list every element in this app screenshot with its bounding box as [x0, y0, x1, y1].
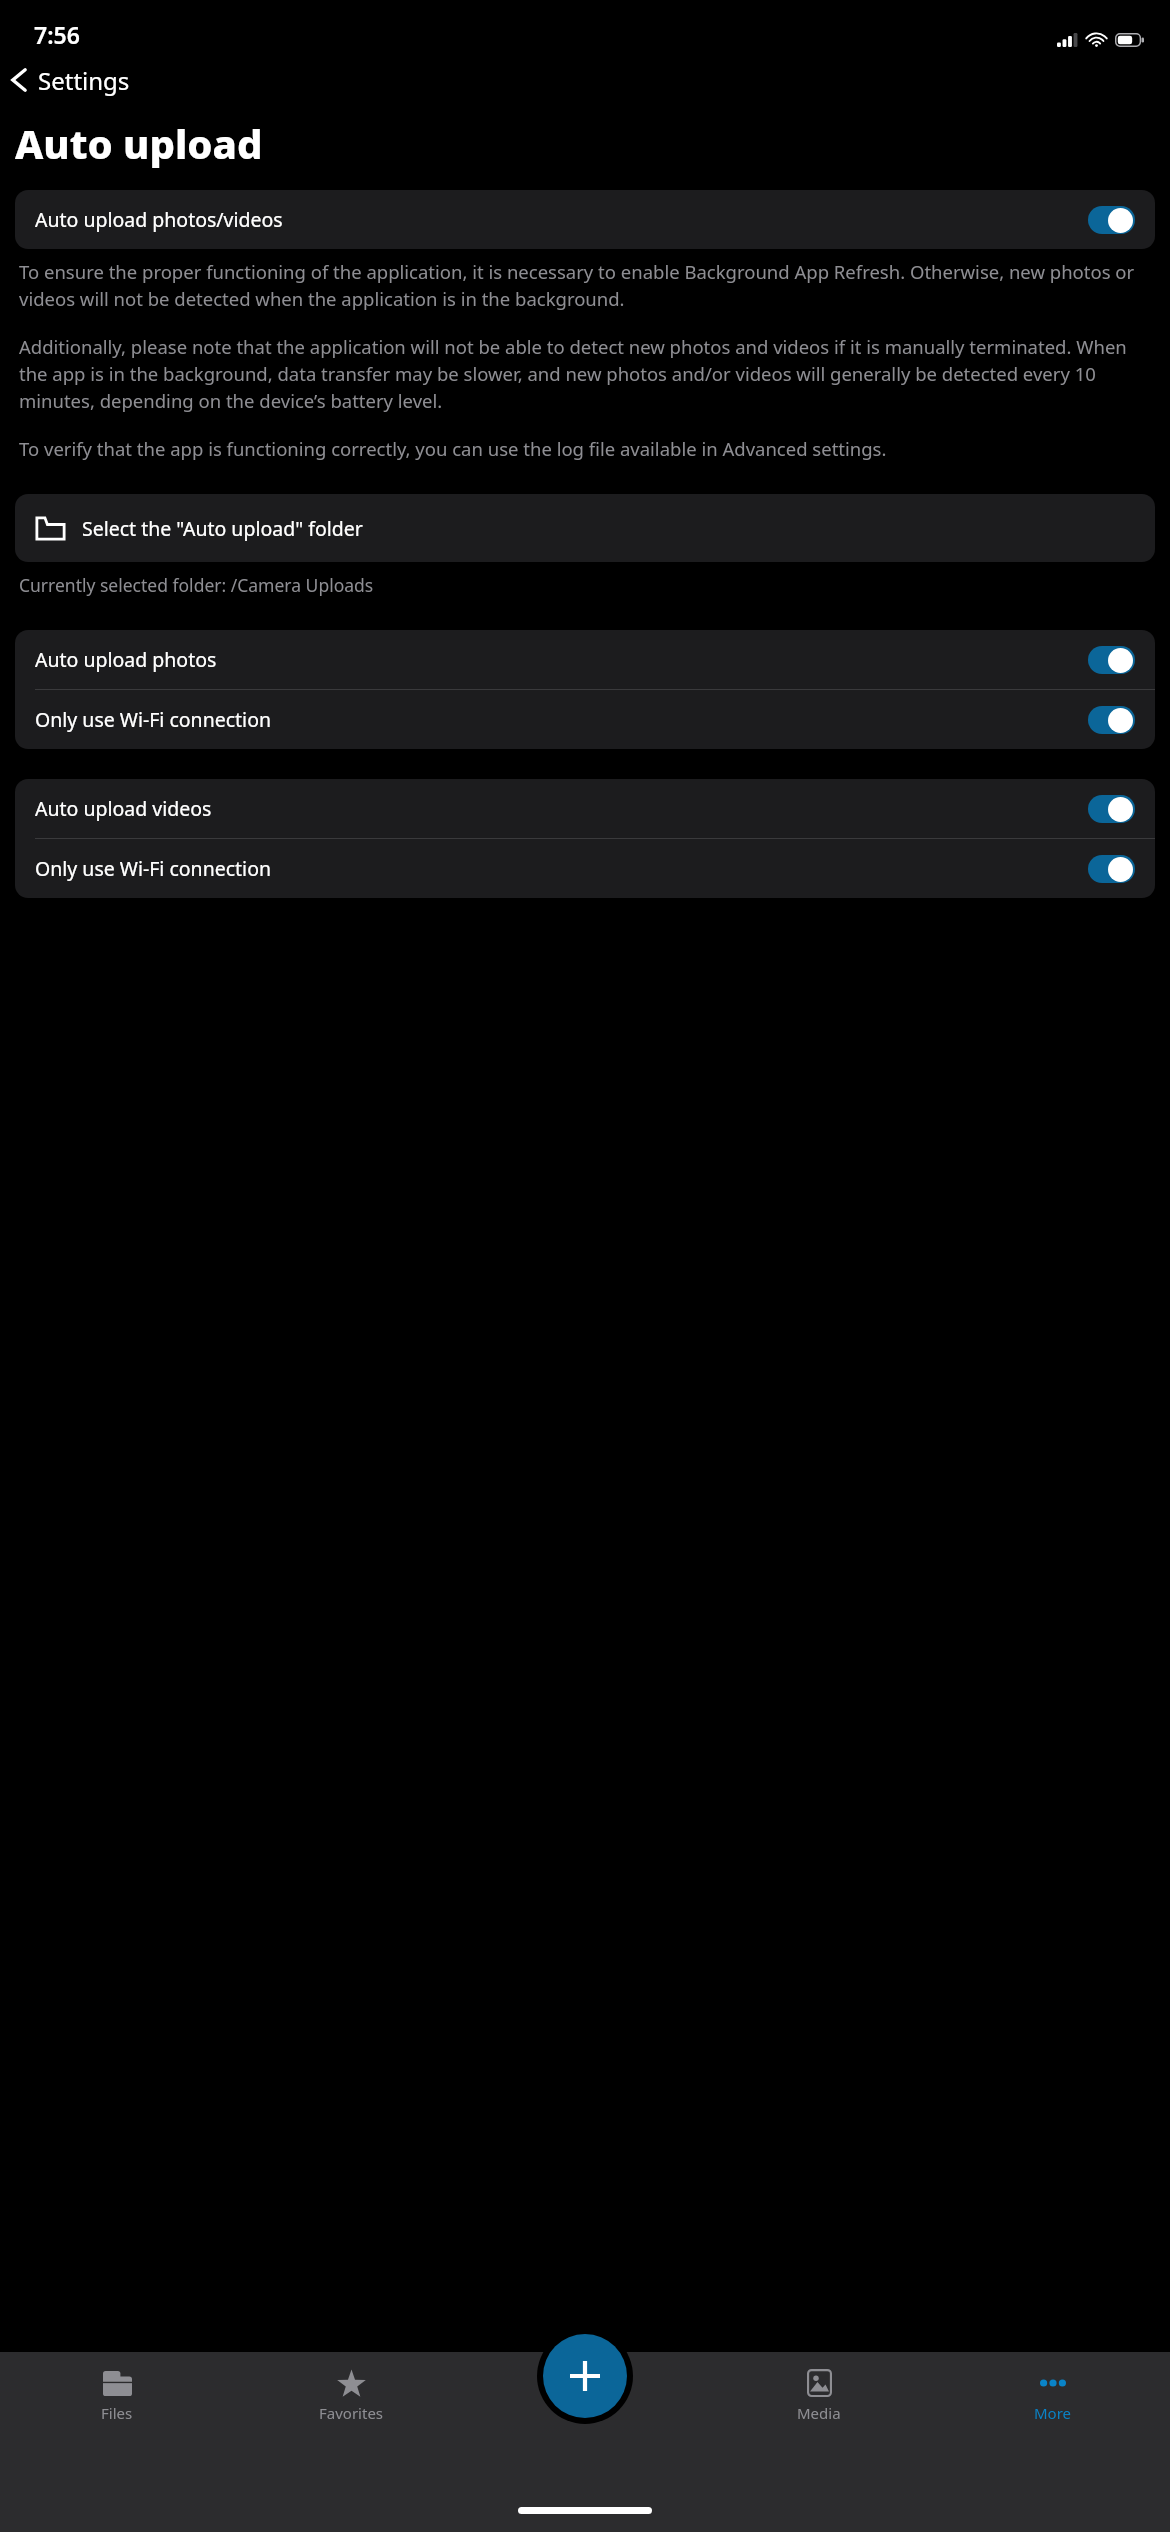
- button[interactable]: Add: [543, 2334, 627, 2418]
- staticText: Auto upload photos/videos: [35, 206, 283, 233]
- staticText: 7:56: [34, 19, 80, 50]
- staticText: Only use Wi-Fi connection: [35, 855, 271, 882]
- button[interactable]: Toggle: [1088, 206, 1135, 234]
- staticText: Select the "Auto upload" folder: [82, 515, 363, 542]
- button[interactable]: Only use Wi-Fi connection: [15, 690, 1155, 749]
- button[interactable]: Media: [702, 2364, 936, 2427]
- staticText: Auto upload: [15, 116, 263, 170]
- button[interactable]: Toggle: [1088, 706, 1135, 734]
- staticText: Only use Wi-Fi connection: [35, 706, 271, 733]
- staticText: To ensure the proper functioning of the …: [19, 259, 1151, 312]
- staticText: Favorites: [319, 2403, 384, 2423]
- button[interactable]: Toggle: [1088, 855, 1135, 883]
- button[interactable]: Back to Settings: [0, 58, 146, 102]
- button[interactable]: Files: [0, 2364, 234, 2427]
- button[interactable]: Select the "Auto upload" folder: [15, 494, 1155, 562]
- button[interactable]: Auto upload videos: [15, 779, 1155, 838]
- staticText: More: [1034, 2403, 1072, 2423]
- staticText: To verify that the app is functioning co…: [19, 436, 887, 461]
- button[interactable]: Toggle: [1088, 646, 1135, 674]
- button[interactable]: Favorites: [234, 2364, 468, 2427]
- button[interactable]: More: [936, 2364, 1170, 2427]
- button[interactable]: Auto upload photos: [15, 630, 1155, 689]
- staticText: Media: [797, 2403, 841, 2423]
- staticText: Settings: [38, 64, 130, 97]
- button[interactable]: Toggle: [1088, 795, 1135, 823]
- button[interactable]: Auto upload photos/videos: [15, 190, 1155, 249]
- button[interactable]: Only use Wi-Fi connection: [15, 839, 1155, 898]
- staticText: Currently selected folder: /Camera Uploa…: [19, 573, 374, 597]
- staticText: Files: [101, 2403, 133, 2423]
- staticText: Additionally, please note that the appli…: [19, 334, 1151, 414]
- staticText: Auto upload videos: [35, 795, 212, 822]
- staticText: Auto upload photos: [35, 646, 217, 673]
